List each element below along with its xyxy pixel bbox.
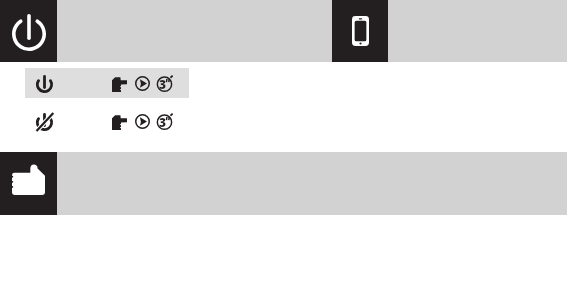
button[interactable]: Power on <box>25 68 189 98</box>
button[interactable]: Power off <box>25 106 189 136</box>
staticText: 3 <box>159 76 167 92</box>
staticText: 3 <box>159 114 167 130</box>
button[interactable]: Device <box>332 0 388 62</box>
button[interactable]: Power <box>0 0 57 62</box>
button[interactable]: Tap action <box>0 152 57 215</box>
